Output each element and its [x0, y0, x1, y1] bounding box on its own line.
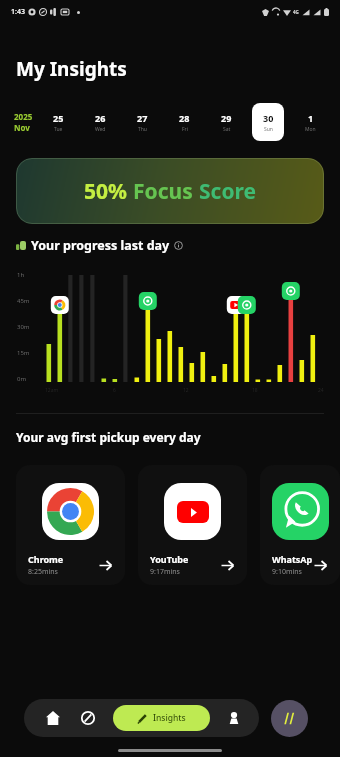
- staticText: 25: [53, 112, 64, 124]
- staticText: 30m: [17, 323, 30, 331]
- staticText: 0m: [17, 375, 27, 383]
- button[interactable]: Home: [42, 707, 64, 729]
- staticText: Nov: [14, 122, 30, 133]
- staticText: 9:10mins: [272, 567, 302, 577]
- staticText: Chrome: [28, 553, 64, 565]
- button[interactable]: Pause tracking: [271, 700, 308, 737]
- button[interactable]: WhatsApp: [260, 465, 340, 585]
- staticText: 26: [95, 112, 106, 124]
- staticText: 30: [263, 112, 274, 124]
- button[interactable]: 30: [252, 103, 284, 141]
- button[interactable]: 26: [84, 103, 116, 141]
- staticText: 1h: [17, 271, 25, 279]
- staticText: 29: [221, 112, 232, 124]
- staticText: 28: [179, 112, 190, 124]
- staticText: 1:43: [11, 7, 25, 17]
- button[interactable]: 25: [42, 103, 74, 141]
- staticText: 4G: [293, 9, 299, 15]
- button[interactable]: Profile: [223, 707, 245, 729]
- staticText: 2025: [14, 111, 33, 122]
- staticText: 18: [252, 387, 258, 394]
- staticText: 12: [183, 387, 189, 394]
- staticText: 9:17mins: [150, 567, 180, 577]
- staticText: Fri: [182, 126, 188, 133]
- staticText: Thu: [138, 126, 147, 133]
- staticText: YouTube: [150, 553, 189, 565]
- staticText: WhatsApp: [272, 553, 313, 565]
- button[interactable]: Insights: [113, 705, 210, 731]
- button[interactable]: 50%: [16, 158, 324, 224]
- staticText: 12am: [45, 387, 59, 394]
- button[interactable]: Chrome: [16, 465, 125, 585]
- staticText: 27: [137, 112, 148, 124]
- button[interactable]: YouTube: [138, 465, 247, 585]
- staticText: 1: [308, 112, 314, 124]
- staticText: Wed: [95, 126, 106, 133]
- staticText: Mon: [305, 126, 316, 133]
- button[interactable]: 27: [126, 103, 158, 141]
- staticText: Focus: [133, 177, 199, 206]
- staticText: 50%: [84, 177, 133, 206]
- button[interactable]: Focus mode: [77, 707, 99, 729]
- button[interactable]: 28: [168, 103, 200, 141]
- staticText: 6: [113, 387, 116, 394]
- staticText: Sat: [223, 126, 231, 133]
- staticText: Score: [199, 177, 257, 206]
- staticText: Sun: [264, 126, 273, 133]
- staticText: Tue: [54, 126, 63, 133]
- staticText: 8:25mins: [28, 567, 58, 577]
- staticText: Insights: [153, 712, 186, 724]
- staticText: Your progress last day: [31, 237, 170, 254]
- staticText: 24: [318, 387, 324, 394]
- staticText: 45m: [17, 297, 30, 305]
- staticText: Your avg first pickup every day: [16, 429, 201, 445]
- button[interactable]: 1: [294, 103, 326, 141]
- staticText: My Insights: [16, 56, 127, 82]
- staticText: 15m: [17, 349, 30, 357]
- button[interactable]: 29: [210, 103, 242, 141]
